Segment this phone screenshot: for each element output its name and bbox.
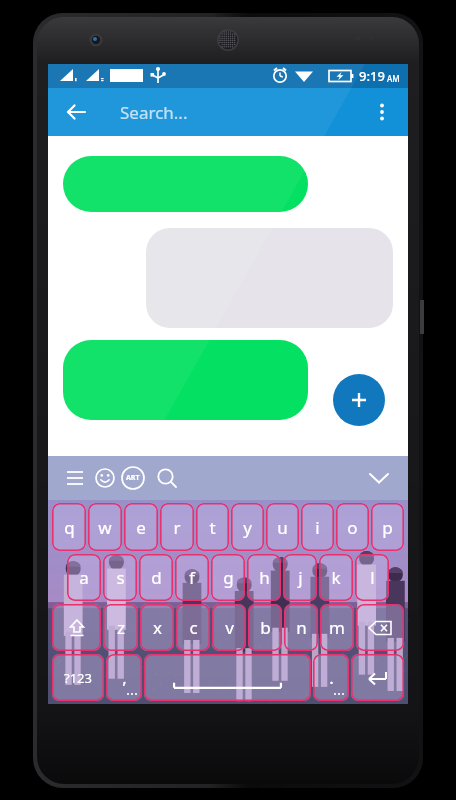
staticText: j bbox=[298, 566, 303, 589]
button[interactable]: f bbox=[175, 554, 209, 601]
button[interactable]: Backspace bbox=[356, 604, 404, 651]
staticText: h bbox=[259, 566, 270, 589]
button[interactable]: a bbox=[67, 554, 101, 601]
button[interactable]: n bbox=[284, 604, 318, 651]
staticText: AM bbox=[387, 73, 400, 84]
staticText: l bbox=[370, 566, 375, 589]
staticText: s bbox=[116, 566, 125, 589]
staticText: c bbox=[189, 616, 198, 639]
button[interactable]: c bbox=[176, 604, 210, 651]
button[interactable]: Space bbox=[144, 654, 311, 701]
button[interactable]: Emoji bbox=[90, 463, 120, 493]
button[interactable]: t bbox=[196, 503, 229, 551]
button[interactable]: More options bbox=[362, 92, 402, 132]
button[interactable]: j bbox=[283, 554, 317, 601]
button[interactable]: ?123 bbox=[52, 654, 104, 701]
staticText: r bbox=[173, 516, 181, 539]
staticText: m bbox=[329, 616, 345, 639]
staticText: n bbox=[296, 616, 307, 639]
button[interactable]: d bbox=[139, 554, 173, 601]
button[interactable]: Hide keyboard bbox=[364, 463, 394, 493]
button[interactable] bbox=[63, 156, 308, 212]
staticText: ?123 bbox=[64, 669, 92, 687]
staticText: o bbox=[347, 516, 358, 539]
button[interactable]: y bbox=[231, 503, 264, 551]
button[interactable]: g bbox=[211, 554, 245, 601]
button[interactable]: u bbox=[266, 503, 299, 551]
button[interactable]: h bbox=[247, 554, 281, 601]
button[interactable]: i bbox=[301, 503, 334, 551]
button[interactable]: b bbox=[248, 604, 282, 651]
staticText: 9:19 bbox=[359, 67, 385, 85]
button[interactable]: l bbox=[355, 554, 389, 601]
staticText: p bbox=[382, 516, 393, 539]
button[interactable]: . bbox=[313, 654, 349, 701]
button[interactable]: q bbox=[52, 503, 86, 551]
button[interactable]: e bbox=[124, 503, 158, 551]
button[interactable]: z bbox=[103, 604, 138, 651]
button[interactable]: v bbox=[212, 604, 246, 651]
button[interactable]: Search bbox=[152, 463, 182, 493]
button[interactable]: , bbox=[106, 654, 142, 701]
staticText: f bbox=[189, 566, 195, 589]
button[interactable]: o bbox=[336, 503, 369, 551]
staticText: i bbox=[315, 516, 320, 539]
staticText: d bbox=[151, 566, 162, 589]
staticText: u bbox=[277, 516, 288, 539]
staticText: e bbox=[136, 516, 146, 539]
button[interactable]: x bbox=[140, 604, 174, 651]
button[interactable]: Back bbox=[56, 92, 96, 132]
button[interactable]: k bbox=[319, 554, 353, 601]
staticText: q bbox=[64, 516, 75, 539]
button[interactable] bbox=[63, 340, 308, 420]
button[interactable]: r bbox=[160, 503, 194, 551]
button[interactable]: Menu bbox=[60, 463, 90, 493]
button[interactable] bbox=[146, 228, 393, 328]
button[interactable]: Enter bbox=[351, 654, 404, 701]
staticText: t bbox=[209, 516, 216, 539]
staticText: k bbox=[331, 566, 341, 589]
staticText: v bbox=[225, 616, 234, 639]
button[interactable]: Add bbox=[333, 374, 385, 426]
staticText: . bbox=[329, 666, 334, 689]
staticText: ART bbox=[126, 473, 140, 483]
staticText: b bbox=[260, 616, 271, 639]
button[interactable]: p bbox=[371, 503, 404, 551]
staticText: , bbox=[122, 666, 127, 689]
button[interactable]: s bbox=[103, 554, 137, 601]
button[interactable]: Art bbox=[120, 465, 146, 491]
button[interactable]: m bbox=[320, 604, 354, 651]
staticText: Search... bbox=[120, 101, 188, 124]
staticText: g bbox=[223, 566, 234, 589]
button[interactable]: Shift bbox=[52, 604, 101, 651]
staticText: z bbox=[117, 616, 125, 639]
staticText: y bbox=[243, 516, 252, 539]
staticText: a bbox=[79, 566, 89, 589]
button[interactable]: w bbox=[88, 503, 122, 551]
staticText: x bbox=[153, 616, 162, 639]
staticText: w bbox=[98, 516, 112, 539]
